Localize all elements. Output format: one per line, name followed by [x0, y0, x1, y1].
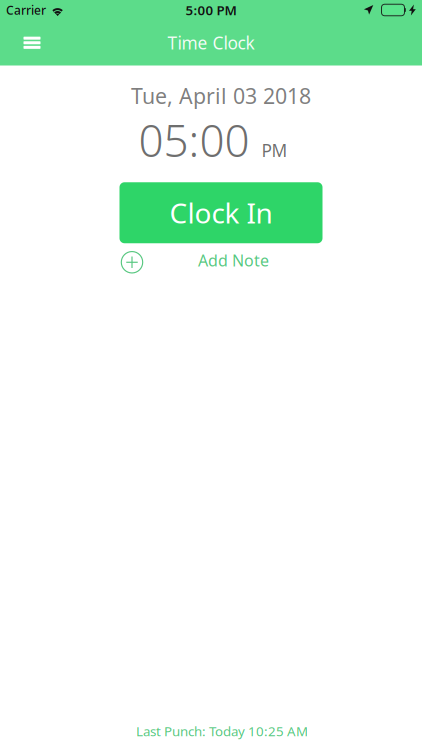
staticText: Last Punch: Today 10:25 AM [136, 722, 308, 740]
staticText: Time Clock [167, 31, 254, 54]
staticText: 05:00 [138, 111, 249, 169]
staticText: PM [261, 139, 287, 162]
button[interactable]: Menu [9, 20, 55, 65]
staticText: Clock In [169, 194, 272, 231]
staticText: Carrier [6, 2, 46, 18]
staticText: 5:00 PM [185, 1, 236, 19]
button[interactable]: Clock In [119, 182, 322, 243]
staticText: Add Note [198, 250, 269, 271]
button[interactable]: Add Note [121, 247, 321, 277]
staticText: Tue, April 03 2018 [131, 81, 311, 110]
